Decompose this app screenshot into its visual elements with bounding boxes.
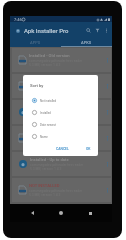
button[interactable]: Search [84,22,93,38]
button[interactable]: Filter [93,22,102,38]
staticText: NOT INSTALLED [29,183,60,188]
staticText: APPS [30,40,41,45]
button[interactable]: Info [105,152,109,176]
staticText: CANCEL [56,147,69,151]
staticText: OK [86,147,91,151]
staticText: Installed - Old version [29,131,70,136]
button[interactable]: Home [54,206,68,220]
button[interactable]: Installed [23,106,98,118]
staticText: Sort by [30,83,44,88]
button[interactable]: App logo [13,26,22,35]
button[interactable]: Installed - Up to date [12,100,111,124]
button[interactable]: More options [102,22,111,38]
staticText: Installed - Old version [29,53,70,58]
button[interactable]: NOT INSTALLED [12,178,111,202]
staticText: Apk Installer Pro [24,27,69,34]
staticText: Installed [40,111,51,114]
staticText: 7:46 [14,17,22,22]
staticText: APKS [81,40,92,45]
staticText: Name [40,135,48,138]
button[interactable]: Info [105,126,109,150]
staticText: Installed - Up to date [30,157,69,162]
button[interactable]: Name [23,130,98,142]
button[interactable]: Info [105,48,109,72]
staticText: Date newest [40,123,56,126]
button[interactable]: OK [84,145,93,153]
button[interactable]: Installed - Old version [12,126,111,150]
staticText: com.megadev.pdfreaderfree.reader [30,111,84,115]
button[interactable]: Installed - Old version [12,48,111,72]
button[interactable]: Info [105,100,109,124]
button[interactable]: Installed - Up to date [12,152,111,176]
staticText: Not installed [40,99,57,102]
button[interactable]: Installed - Old version [12,74,111,98]
button[interactable]: APPS [10,38,61,47]
button[interactable]: Info [105,74,109,98]
staticText: com.megadev.pdfreaderfree.reader [29,137,83,141]
button[interactable]: Info [105,178,109,202]
button[interactable]: Date newest [23,118,98,130]
button[interactable]: Not installed [23,94,98,106]
button[interactable]: Back [25,206,39,220]
button[interactable]: CANCEL [54,145,71,153]
button[interactable]: Recents [83,206,97,220]
button[interactable]: APKS [61,38,112,47]
staticText: com.megadev.pdfreaderfree.reader [29,85,83,89]
